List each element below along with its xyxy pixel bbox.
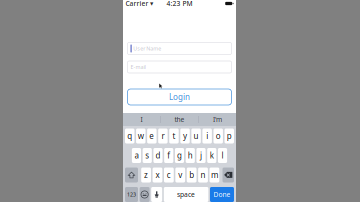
button[interactable]: g (175, 148, 184, 163)
staticText: j (200, 150, 202, 161)
staticText: t (172, 131, 175, 141)
button[interactable]: j (196, 148, 206, 163)
staticText: c (167, 170, 171, 180)
staticText: Carrier (125, 0, 148, 8)
button[interactable]: h (186, 148, 195, 163)
staticText: 123 (127, 191, 136, 198)
button[interactable]: Login (127, 89, 231, 105)
button[interactable]: space (164, 187, 208, 202)
staticText: x (155, 170, 159, 180)
button[interactable]: c (164, 167, 174, 182)
button[interactable]: y (180, 128, 190, 143)
button[interactable]: I'm (199, 113, 236, 126)
button[interactable]: i (202, 128, 212, 143)
button[interactable]: Dictation (151, 187, 162, 202)
staticText: I (140, 115, 142, 124)
button[interactable]: r (158, 128, 168, 143)
button[interactable]: Done (210, 187, 234, 202)
button[interactable]: o (213, 128, 223, 143)
staticText: q (127, 131, 132, 141)
staticText: r (161, 131, 164, 141)
staticText: E-mail (130, 63, 145, 71)
staticText: o (216, 131, 221, 141)
staticText: p (227, 131, 232, 141)
staticText: k (210, 150, 214, 161)
button[interactable]: s (143, 148, 152, 163)
button[interactable]: z (141, 167, 151, 182)
staticText: e (149, 131, 154, 141)
button[interactable]: Delete (222, 167, 234, 182)
button[interactable]: Emoji (140, 187, 150, 202)
staticText: f (167, 150, 170, 161)
button[interactable]: v (175, 167, 185, 182)
staticText: Done (213, 190, 230, 199)
staticText: u (194, 131, 199, 141)
staticText: h (188, 150, 193, 161)
staticText: m (211, 170, 218, 180)
staticText: d (155, 150, 160, 161)
button[interactable]: k (207, 148, 216, 163)
button[interactable]: m (209, 167, 219, 182)
staticText: the (174, 115, 184, 124)
button[interactable]: Shift (125, 167, 138, 182)
button[interactable]: e (147, 128, 157, 143)
staticText: g (177, 150, 182, 161)
staticText: b (189, 170, 194, 180)
button[interactable]: t (169, 128, 179, 143)
button[interactable]: p (224, 128, 234, 143)
staticText: z (144, 170, 148, 180)
button[interactable]: l (218, 148, 227, 163)
staticText: a (134, 150, 138, 161)
button[interactable]: q (125, 128, 134, 143)
staticText: n (200, 170, 205, 180)
staticText: l (221, 150, 223, 161)
staticText: i (206, 131, 208, 141)
button[interactable]: u (191, 128, 201, 143)
staticText: y (183, 131, 187, 141)
button[interactable]: n (198, 167, 208, 182)
staticText: 4:23 PM (166, 0, 192, 8)
staticText: s (145, 150, 149, 161)
staticText: w (138, 131, 144, 141)
staticText: User Name (133, 45, 161, 52)
button[interactable]: b (187, 167, 196, 182)
staticText: space (177, 190, 195, 199)
staticText: ▾ (150, 0, 153, 7)
button[interactable]: a (132, 148, 141, 163)
button[interactable]: w (136, 128, 146, 143)
button[interactable]: the (161, 113, 198, 126)
staticText: v (178, 170, 182, 180)
button[interactable]: 123 (125, 187, 138, 202)
button[interactable]: d (153, 148, 163, 163)
button[interactable]: x (153, 167, 162, 182)
staticText: Login (169, 92, 190, 102)
button[interactable]: f (164, 148, 173, 163)
staticText: I'm (213, 115, 222, 124)
button[interactable]: I (123, 113, 160, 126)
